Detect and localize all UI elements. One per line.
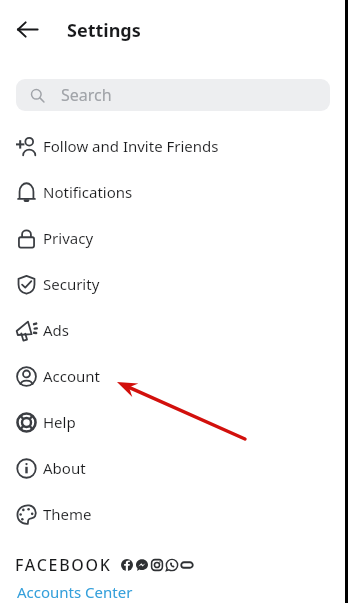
button[interactable]: Follow and Invite Friends (0, 123, 348, 169)
button[interactable]: Help (0, 399, 348, 445)
button[interactable]: Accounts Center (0, 581, 348, 603)
staticText: Notifications (43, 182, 133, 202)
button[interactable]: Account (0, 353, 348, 399)
staticText: Ads (43, 320, 69, 340)
button[interactable]: Back (11, 13, 43, 45)
button[interactable]: Privacy (0, 215, 348, 261)
staticText: About (43, 458, 86, 478)
staticText: Account (43, 366, 101, 386)
button[interactable]: Messenger (136, 559, 148, 571)
staticText: Theme (43, 504, 92, 524)
staticText: Help (43, 412, 76, 432)
button[interactable]: Security (0, 261, 348, 307)
button[interactable]: Facebook (121, 559, 133, 571)
button[interactable]: WhatsApp (166, 559, 178, 571)
staticText: Security (43, 274, 100, 294)
button[interactable]: Notifications (0, 169, 348, 215)
staticText: Accounts Center (17, 582, 133, 602)
button[interactable]: Instagram (151, 559, 163, 571)
staticText: Privacy (43, 228, 94, 248)
button[interactable]: About (0, 445, 348, 491)
button[interactable]: Search (16, 79, 330, 111)
button[interactable]: Ads (0, 307, 348, 353)
staticText: Search (61, 84, 112, 106)
staticText: Follow and Invite Friends (43, 136, 219, 156)
staticText: FACEBOOK (15, 554, 112, 576)
staticText: Settings (67, 18, 141, 43)
button[interactable]: Theme (0, 491, 348, 537)
button[interactable]: Meta (181, 559, 193, 571)
